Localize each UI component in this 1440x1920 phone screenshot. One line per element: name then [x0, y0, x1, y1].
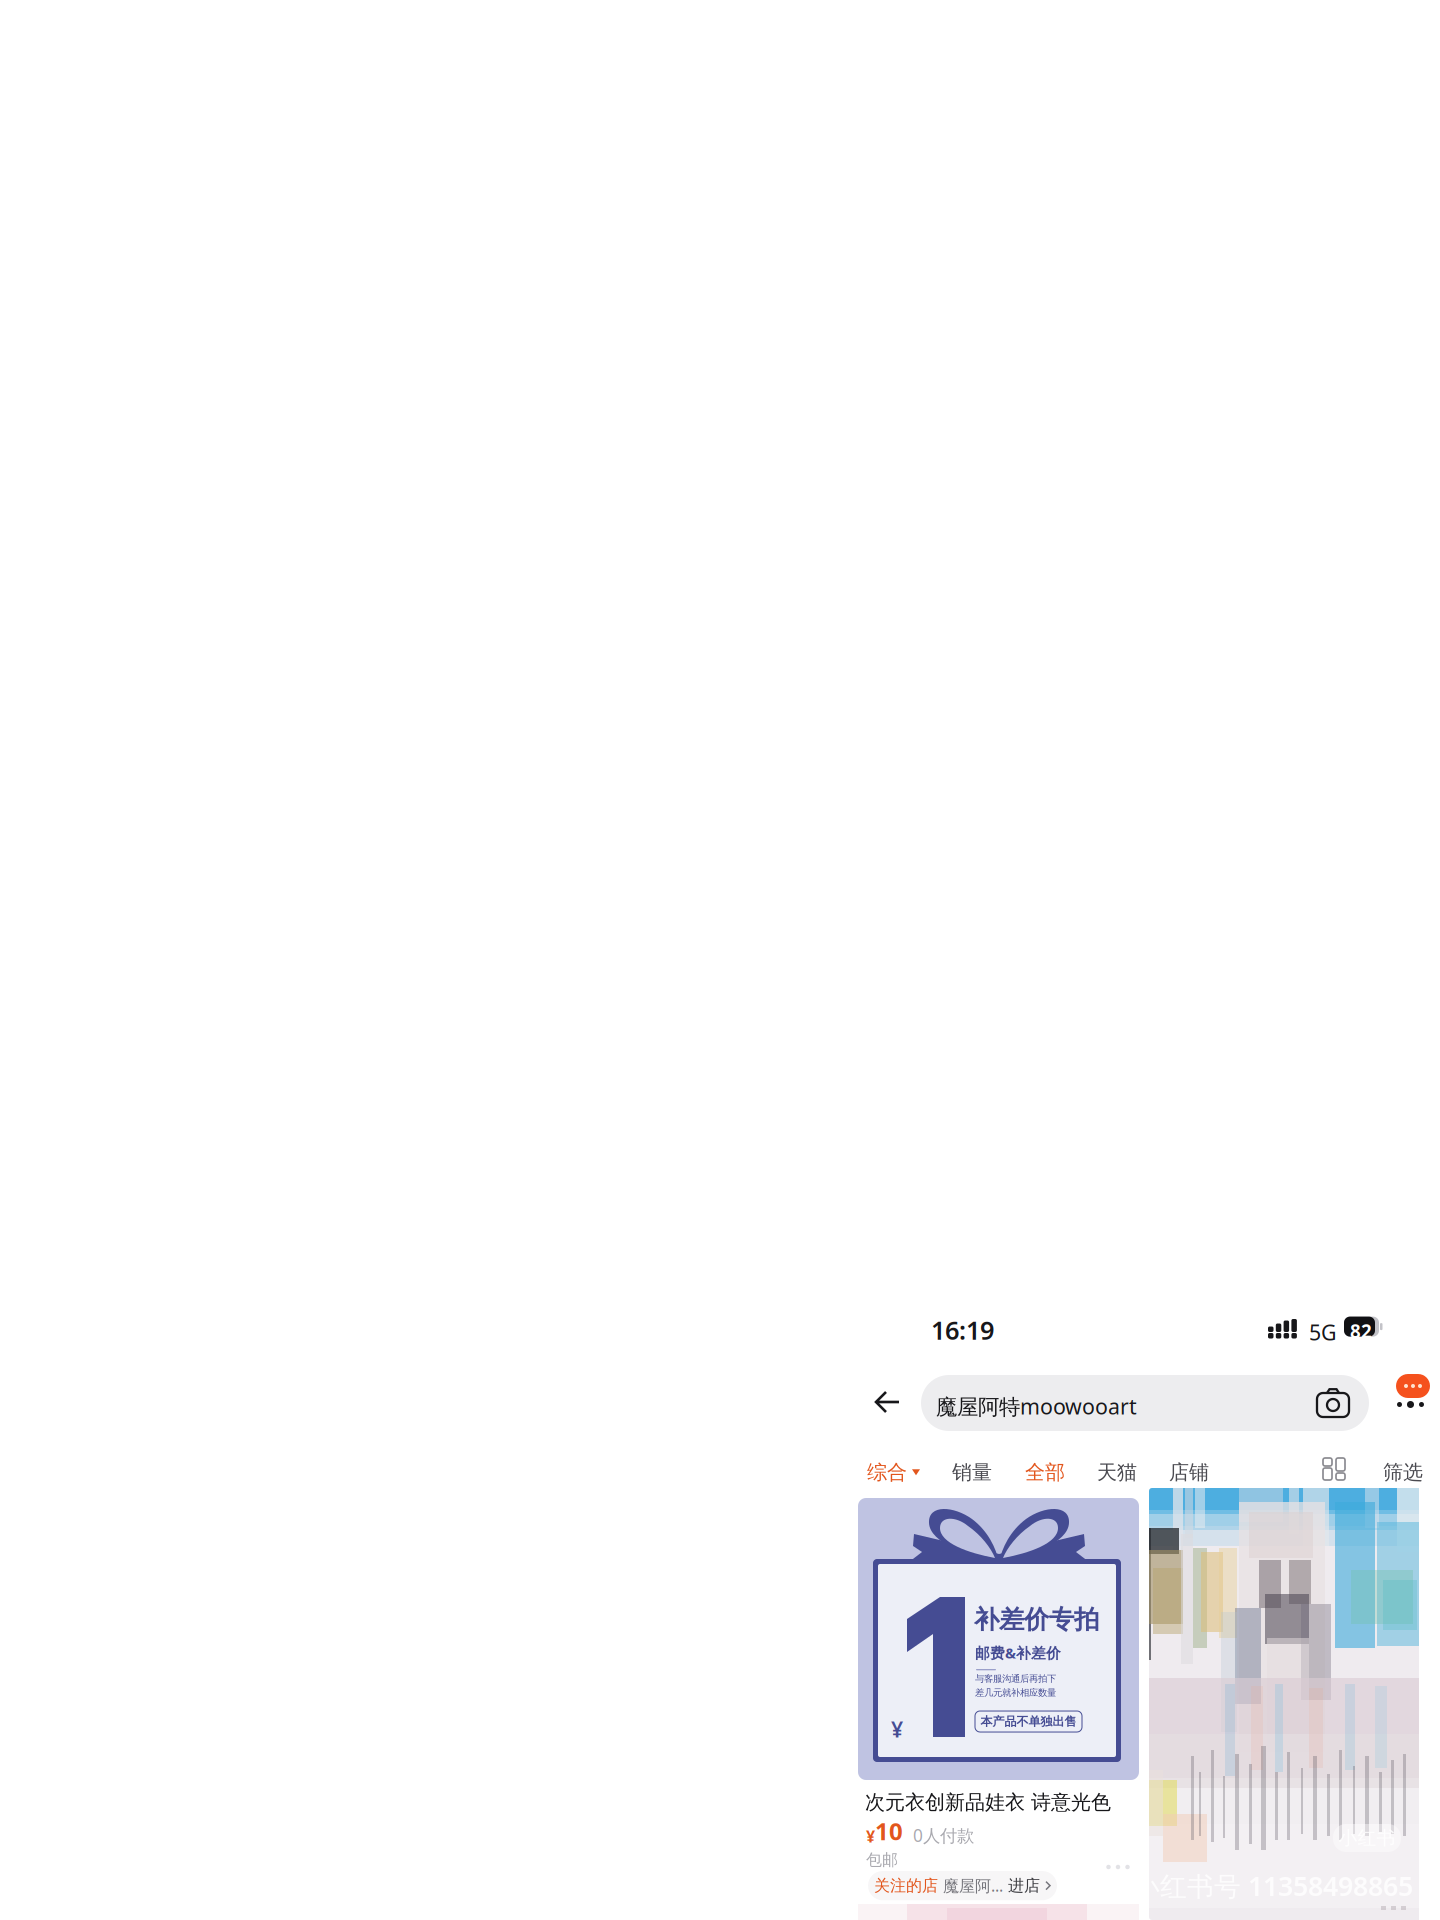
button[interactable]: 天猫: [1097, 1460, 1137, 1485]
button[interactable]: ¥: [858, 1498, 1139, 1904]
staticText: 综合: [867, 1460, 907, 1485]
staticText: 包邮: [866, 1850, 898, 1870]
button[interactable]: Switch layout: [1323, 1458, 1346, 1480]
button[interactable]: Back: [865, 1379, 911, 1425]
staticText: 0人付款: [903, 1824, 974, 1847]
staticText: 10: [875, 1815, 903, 1847]
staticText: 全部: [1025, 1460, 1065, 1485]
staticText: 16:19: [931, 1313, 994, 1347]
button[interactable]: 魔屋阿特moowooart: [921, 1375, 1369, 1431]
button[interactable]: 综合: [867, 1460, 920, 1485]
staticText: 与客服沟通后再拍下: [975, 1673, 1056, 1684]
staticText: 进店: [1008, 1876, 1040, 1895]
button[interactable]: More options: [1391, 1370, 1435, 1414]
staticText: 魔屋阿...: [943, 1875, 1003, 1896]
staticText: ¥: [891, 1715, 903, 1743]
button[interactable]: 全部: [1025, 1460, 1065, 1485]
staticText: 次元衣创新品娃衣 诗意光色: [865, 1790, 1111, 1815]
button[interactable]: 小红书: [1149, 1488, 1429, 1920]
staticText: 差几元就补相应数量: [975, 1687, 1056, 1698]
button[interactable]: 筛选: [1383, 1460, 1423, 1485]
staticText: 店铺: [1169, 1460, 1209, 1485]
button[interactable]: 销量: [952, 1460, 992, 1485]
staticText: 82: [1350, 1319, 1372, 1343]
staticText: 小红书号 11358498865: [1133, 1868, 1413, 1903]
staticText: 魔屋阿特moowooart: [936, 1392, 1137, 1420]
staticText: 小红书: [1338, 1826, 1395, 1849]
staticText: 邮费&补差价: [975, 1643, 1061, 1662]
staticText: 补差价专拍: [974, 1604, 1099, 1635]
staticText: 5G: [1309, 1318, 1337, 1346]
staticText: 筛选: [1383, 1460, 1423, 1485]
staticText: 关注的店: [874, 1876, 938, 1895]
staticText: ¥: [866, 1826, 875, 1847]
staticText: 本产品不单独出售: [980, 1714, 1076, 1729]
staticText: 销量: [952, 1460, 992, 1485]
staticText: 天猫: [1097, 1460, 1137, 1485]
button[interactable]: 店铺: [1169, 1460, 1209, 1485]
